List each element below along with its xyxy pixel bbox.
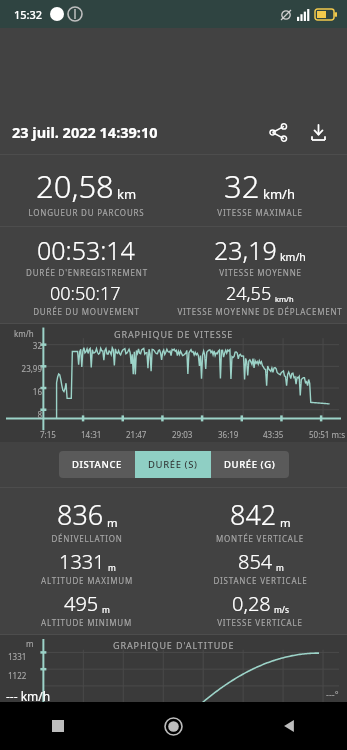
staticText: 23 juil. 2022 14:39:10: [12, 122, 261, 142]
staticText: GRAPHIQUE D'ALTITUDE: [113, 639, 235, 651]
staticText: DURÉE (S): [148, 458, 198, 471]
staticText: 23,99: [0, 363, 42, 374]
button[interactable]: DURÉE (S): [135, 451, 211, 478]
staticText: 29:03: [172, 429, 193, 440]
staticText: 36:19: [218, 429, 239, 440]
staticText: 16: [0, 386, 42, 397]
staticText: LONGUEUR DU PARCOURS: [28, 207, 145, 218]
staticText: MONTÉE VERTICALE: [216, 533, 304, 544]
staticText: --- km/h: [6, 688, 51, 702]
staticText: DISTANCE VERTICALE: [213, 575, 308, 586]
button[interactable]: DURÉE (G): [211, 451, 289, 478]
staticText: 8: [0, 409, 42, 420]
staticText: VITESSE VERTICALE: [217, 617, 303, 628]
button[interactable]: Home: [115, 702, 231, 750]
staticText: 20,58: [36, 165, 114, 207]
staticText: 23,19: [214, 233, 277, 267]
staticText: DÉNIVELLATION: [51, 533, 123, 544]
staticText: m: [276, 562, 284, 573]
staticText: 32: [0, 340, 42, 351]
staticText: 1122: [8, 670, 27, 681]
staticText: VITESSE MOYENNE: [219, 267, 302, 278]
button[interactable]: 23 juil. 2022 14:39:10: [0, 110, 347, 154]
staticText: DURÉE D'ENREGISTREMENT: [26, 267, 148, 278]
staticText: m: [102, 604, 110, 615]
staticText: DURÉE (G): [224, 458, 276, 471]
staticText: km/h: [275, 294, 294, 304]
button[interactable]: Download: [301, 115, 335, 149]
staticText: m/s: [274, 604, 289, 615]
staticText: GRAPHIQUE DE VITESSE: [114, 328, 234, 340]
staticText: 854: [238, 548, 273, 575]
staticText: 14:31: [81, 429, 102, 440]
staticText: m: [280, 515, 291, 530]
staticText: VITESSE MOYENNE DE DÉPLACEMENT: [177, 306, 343, 317]
staticText: 50:51 m:s: [309, 429, 345, 440]
button[interactable]: DISTANCE: [59, 451, 135, 478]
staticText: 00:53:14: [37, 233, 135, 267]
staticText: ---°: [326, 688, 339, 700]
staticText: ALTITUDE MINIMUM: [41, 617, 132, 628]
staticText: ALTITUDE MAXIMUM: [41, 575, 133, 586]
staticText: 43:35: [263, 429, 284, 440]
staticText: DURÉE DU MOUVEMENT: [33, 306, 140, 317]
staticText: 21:47: [126, 429, 147, 440]
staticText: m: [108, 562, 116, 573]
staticText: km: [117, 185, 137, 203]
staticText: 15:32: [14, 7, 43, 22]
staticText: 0,28: [232, 590, 271, 617]
staticText: m: [26, 638, 34, 649]
staticText: km/h: [280, 250, 306, 264]
staticText: VITESSE MAXIMALE: [217, 207, 303, 218]
staticText: DISTANCE: [72, 458, 122, 471]
staticText: 495: [64, 590, 99, 617]
staticText: 00:50:17: [50, 281, 121, 306]
staticText: 7:15: [40, 429, 56, 440]
staticText: km/h: [14, 328, 34, 339]
button[interactable]: Share: [261, 115, 295, 149]
staticText: 842: [230, 496, 277, 533]
staticText: 1331: [8, 651, 27, 662]
button[interactable]: Recents: [0, 702, 115, 750]
staticText: 32: [224, 165, 260, 207]
staticText: 1331: [59, 548, 105, 575]
staticText: 836: [57, 496, 104, 533]
staticText: 24,55: [226, 281, 272, 306]
button[interactable]: Back: [231, 702, 347, 750]
staticText: km/h: [263, 185, 296, 203]
staticText: m: [107, 515, 118, 530]
